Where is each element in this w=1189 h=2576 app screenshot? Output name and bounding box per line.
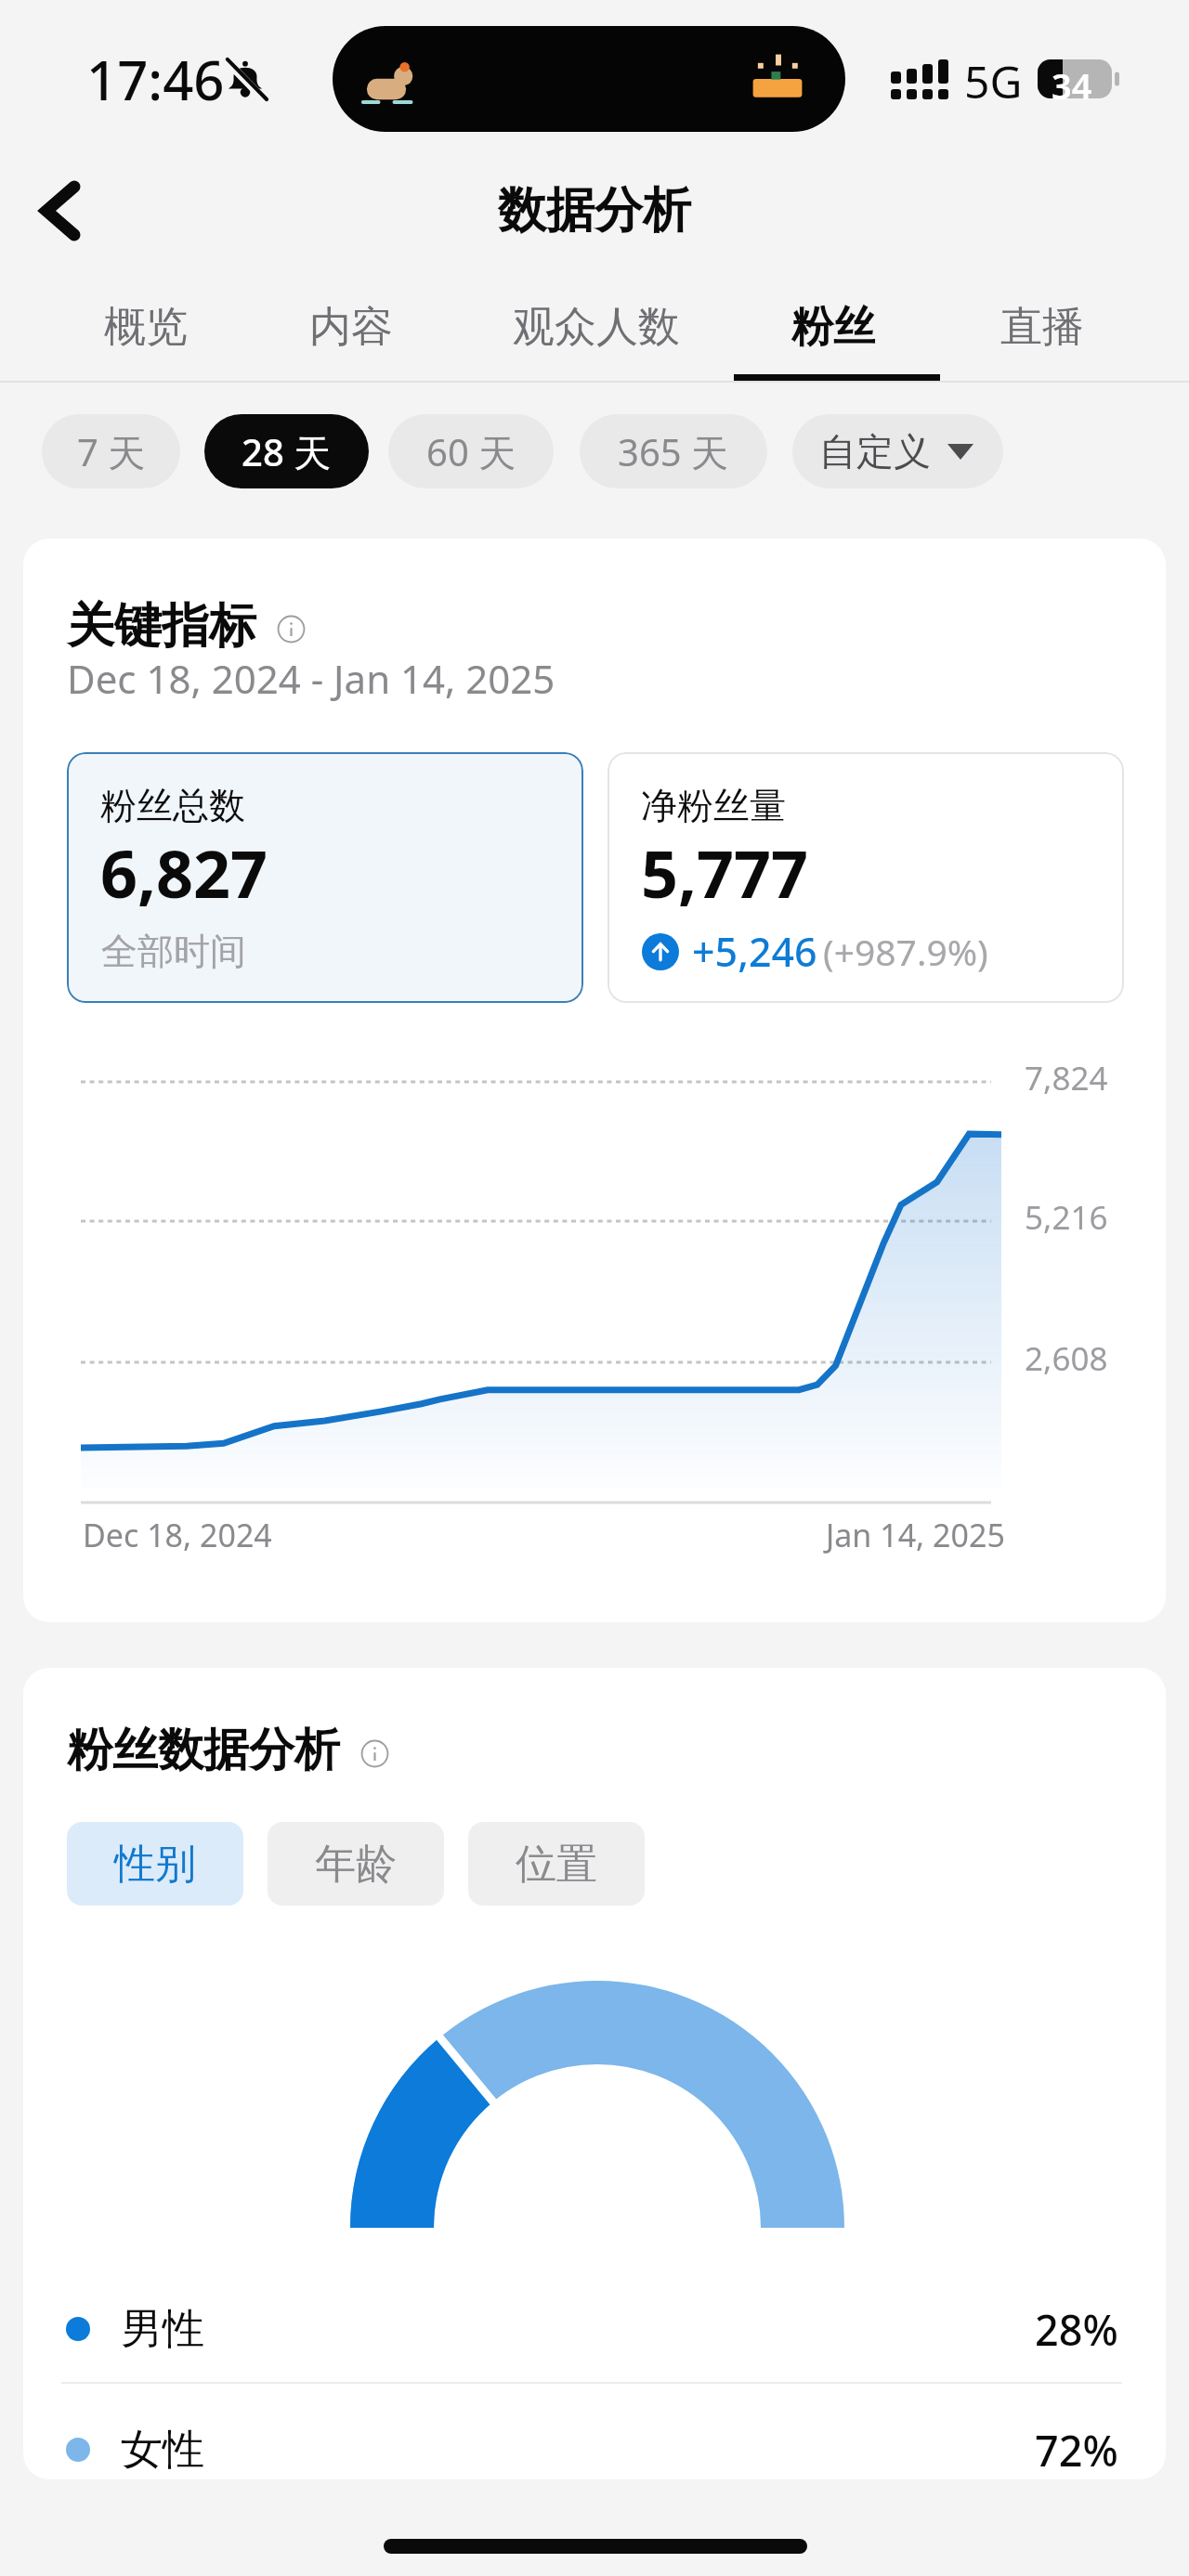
staticText: 5,216 bbox=[1025, 1195, 1108, 1240]
staticText: Dec 18, 2024 bbox=[83, 1514, 272, 1556]
staticText: Dec 18, 2024 - Jan 14, 2025 bbox=[67, 652, 555, 705]
staticText: 粉丝 bbox=[791, 301, 875, 354]
staticText: 内容 bbox=[309, 301, 393, 354]
button[interactable]: 净粉丝量 bbox=[608, 752, 1124, 1003]
staticText: 年龄 bbox=[315, 1839, 397, 1890]
staticText: Jan 14, 2025 bbox=[826, 1514, 1005, 1556]
button[interactable]: 女性 bbox=[23, 2392, 1166, 2479]
staticText: 净粉丝量 bbox=[641, 783, 786, 828]
button[interactable]: 内容 bbox=[295, 271, 407, 383]
staticText: 全部时间 bbox=[101, 929, 246, 974]
staticText: 位置 bbox=[516, 1839, 597, 1890]
button[interactable]: 粉丝 bbox=[777, 271, 889, 383]
staticText: 34 bbox=[1052, 61, 1092, 100]
staticText: (+987.9%) bbox=[823, 927, 988, 976]
staticText: 概览 bbox=[104, 301, 188, 354]
staticText: 5G bbox=[964, 51, 1023, 111]
button[interactable]: 60 天 bbox=[388, 414, 554, 488]
staticText: 17:46 bbox=[86, 43, 225, 116]
button[interactable]: 概览 bbox=[90, 271, 202, 383]
button[interactable]: 365 天 bbox=[580, 414, 767, 488]
staticText: 7,824 bbox=[1025, 1056, 1108, 1100]
staticText: 女性 bbox=[121, 2424, 204, 2477]
staticText: 性别 bbox=[114, 1839, 196, 1890]
staticText: 关键指标 bbox=[67, 596, 256, 656]
button[interactable]: 年龄 bbox=[268, 1822, 444, 1906]
staticText: 365 天 bbox=[618, 426, 729, 477]
staticText: 粉丝数据分析 bbox=[67, 1722, 340, 1779]
button[interactable]: Back bbox=[17, 167, 104, 254]
staticText: 28 天 bbox=[242, 426, 332, 477]
staticText: 6,827 bbox=[100, 828, 268, 917]
staticText: +5,246 bbox=[692, 924, 817, 979]
button[interactable]: 男性 bbox=[23, 2271, 1166, 2387]
staticText: 60 天 bbox=[426, 426, 516, 477]
staticText: 5,777 bbox=[641, 828, 809, 917]
staticText: 男性 bbox=[121, 2303, 204, 2356]
button[interactable]: 自定义 bbox=[792, 414, 1003, 488]
staticText: 72% bbox=[1035, 2422, 1118, 2478]
staticText: 28% bbox=[1035, 2301, 1118, 2358]
button[interactable]: 粉丝总数 bbox=[67, 752, 583, 1003]
button[interactable]: 性别 bbox=[67, 1822, 243, 1906]
button[interactable]: 7 天 bbox=[42, 414, 180, 488]
button[interactable]: 位置 bbox=[468, 1822, 645, 1906]
staticText: 7 天 bbox=[77, 426, 146, 477]
staticText: 观众人数 bbox=[513, 301, 680, 354]
staticText: 数据分析 bbox=[498, 180, 691, 241]
staticText: 粉丝总数 bbox=[100, 783, 245, 828]
button[interactable]: 直播 bbox=[986, 271, 1098, 383]
staticText: 直播 bbox=[1000, 301, 1084, 354]
staticText: 自定义 bbox=[819, 428, 931, 475]
staticText: 2,608 bbox=[1025, 1336, 1108, 1381]
button[interactable]: 28 天 bbox=[204, 414, 369, 488]
button[interactable]: 观众人数 bbox=[503, 271, 689, 383]
